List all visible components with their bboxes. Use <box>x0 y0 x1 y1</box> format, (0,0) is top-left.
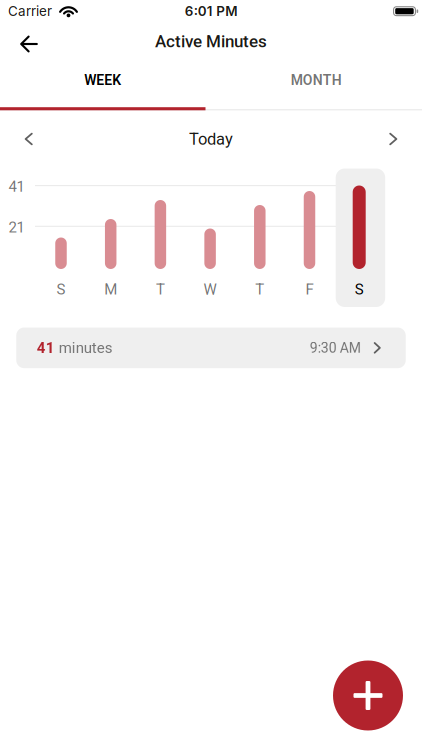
staticText: S <box>355 280 364 298</box>
staticText: M <box>104 280 117 298</box>
staticText: T <box>255 280 264 298</box>
staticText: 21 <box>8 219 24 236</box>
staticText: 9:30 AM <box>310 340 361 356</box>
button[interactable]: Back <box>0 23 38 65</box>
staticText: Active Minutes <box>155 31 267 51</box>
staticText: F <box>305 280 313 298</box>
button[interactable]: Next <box>389 113 422 165</box>
staticText: Carrier <box>8 3 52 19</box>
staticText: 41 <box>37 339 55 357</box>
staticText: PM <box>216 3 237 19</box>
button[interactable]: Previous <box>0 113 33 165</box>
staticText: 41 <box>8 178 24 195</box>
staticText: Today <box>189 129 233 149</box>
staticText: 6:01 <box>185 3 213 19</box>
staticText: WEEK <box>84 72 121 88</box>
button[interactable]: WEEK <box>0 57 205 103</box>
button[interactable]: 41 <box>16 327 406 368</box>
button[interactable]: Add <box>333 660 403 730</box>
staticText: W <box>204 280 217 298</box>
button[interactable]: MONTH <box>205 57 422 103</box>
staticText: minutes <box>55 339 113 357</box>
staticText: T <box>156 280 165 298</box>
staticText: S <box>56 280 65 298</box>
staticText: MONTH <box>291 72 342 88</box>
